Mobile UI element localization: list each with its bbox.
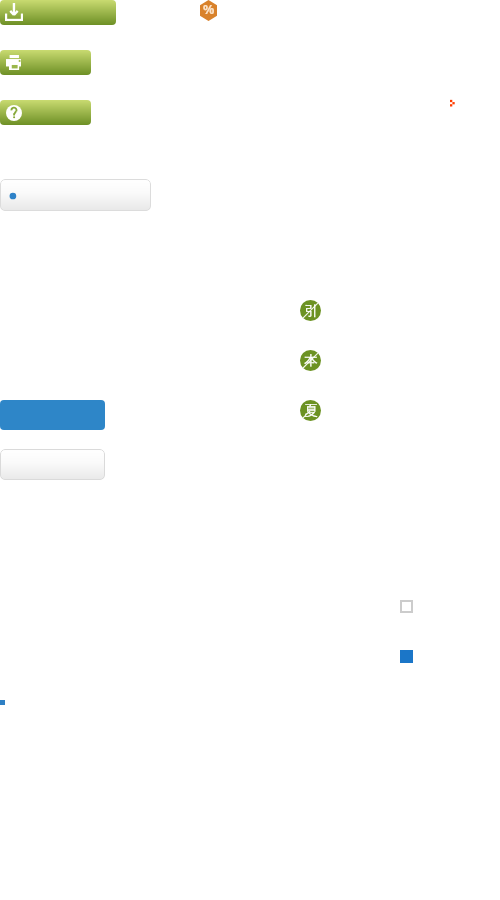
button[interactable]: Cancel (0, 449, 105, 480)
button[interactable]: Download (0, 0, 116, 25)
button[interactable]: Share (449, 99, 456, 106)
staticText: 引 (304, 302, 318, 319)
button[interactable]: 本 (300, 350, 321, 371)
button[interactable]: Discount (200, 0, 217, 21)
button[interactable]: 引 (300, 300, 321, 321)
button[interactable]: Checkbox unchecked (400, 600, 413, 613)
button[interactable] (0, 179, 151, 211)
button[interactable]: 夏 (300, 400, 321, 421)
staticText: % (203, 1, 215, 18)
button[interactable]: Submit (0, 400, 105, 430)
button[interactable]: Help (0, 100, 91, 125)
staticText: 夏 (304, 402, 318, 419)
button[interactable]: Print (0, 50, 91, 75)
staticText: 本 (304, 352, 318, 369)
